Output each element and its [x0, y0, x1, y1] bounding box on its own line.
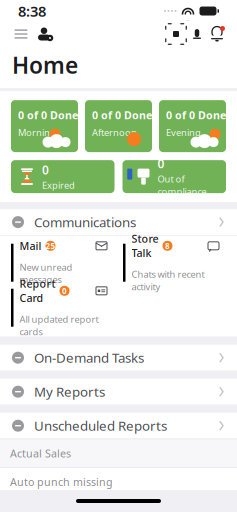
staticText: My Reports [34, 383, 105, 400]
staticText: Actual Sales [10, 446, 71, 460]
staticText: 0 [42, 162, 49, 178]
button[interactable]: Store Talk [123, 244, 226, 282]
staticText: Mail [19, 239, 41, 253]
staticText: Report Card [19, 277, 55, 305]
button[interactable]: Actual Sales [0, 439, 237, 467]
staticText: Auto punch missing [10, 475, 113, 489]
button[interactable]: Unscheduled Reports [0, 413, 237, 439]
button[interactable]: Profile [32, 23, 56, 45]
staticText: Store Talk [131, 232, 158, 260]
button[interactable]: 0 of 0 Done [85, 100, 152, 152]
staticText: New unread messages [19, 261, 72, 286]
staticText: Out of compliance [157, 173, 206, 197]
staticText: Communications [34, 213, 136, 231]
button[interactable]: Scan [165, 24, 187, 44]
button[interactable]: 0 of 0 Done [11, 100, 78, 152]
staticText: Home [12, 50, 78, 80]
button[interactable]: 0 of 0 Done [159, 100, 226, 152]
staticText: 0 of 0 Done [166, 108, 226, 122]
button[interactable]: Communications [0, 209, 237, 235]
staticText: 8:38 [18, 1, 46, 21]
staticText: Morning [18, 126, 56, 139]
staticText: On-Demand Tasks [34, 349, 144, 366]
button[interactable]: My Reports [0, 379, 237, 405]
staticText: 0 of 0 Done [92, 108, 152, 122]
button[interactable]: Auto punch missing [0, 468, 237, 496]
staticText: Unscheduled Reports [34, 417, 167, 434]
staticText: 8 [165, 240, 170, 251]
staticText: 25 [45, 240, 55, 251]
button[interactable]: Menu [10, 23, 32, 45]
button[interactable]: Report Card [11, 289, 114, 327]
staticText: Afternoon [92, 126, 137, 139]
button[interactable]: 0 [11, 160, 114, 193]
staticText: All updated report cards [19, 313, 98, 338]
staticText: 0 [157, 156, 164, 172]
staticText: 0 [62, 285, 67, 296]
button[interactable]: Mail [11, 244, 114, 282]
staticText: Chats with recent activity [131, 268, 204, 293]
button[interactable]: 0 [122, 160, 226, 193]
staticText: Expired [42, 179, 75, 191]
button[interactable]: On-Demand Tasks [0, 345, 237, 371]
staticText: Evening [166, 126, 201, 139]
button[interactable]: Voice [187, 24, 207, 44]
button[interactable]: Notifications [207, 24, 227, 44]
staticText: 0 of 0 Done [18, 108, 78, 122]
